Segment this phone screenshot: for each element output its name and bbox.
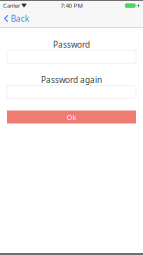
staticText: Password again <box>41 74 102 86</box>
staticText: Back <box>11 13 29 24</box>
button[interactable]: Back <box>0 9 34 28</box>
button[interactable]: Ok <box>7 110 136 123</box>
staticText: Ok <box>66 112 76 122</box>
staticText: 7:40 PM <box>60 1 82 10</box>
staticText: Carrier <box>3 2 20 9</box>
staticText: Password <box>53 39 90 50</box>
